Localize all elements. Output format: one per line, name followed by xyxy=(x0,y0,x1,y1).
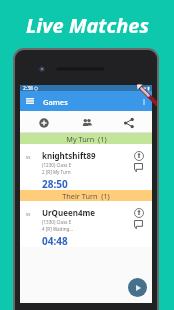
button[interactable]: Play xyxy=(128,278,147,297)
staticText: vs xyxy=(26,154,31,160)
staticText: 4 [R] Waiting... xyxy=(42,226,74,232)
button[interactable]: Chat xyxy=(133,220,144,229)
button[interactable]: vs xyxy=(20,144,152,190)
staticText: Games xyxy=(43,97,68,107)
button[interactable]: My Turn (1) xyxy=(20,133,152,144)
staticText: Live Matches xyxy=(26,12,149,39)
button[interactable]: Info xyxy=(133,207,144,218)
staticText: UrQueen4me xyxy=(42,207,96,218)
button[interactable]: More options xyxy=(139,97,148,106)
staticText: 2 [R] My Turn xyxy=(42,169,71,175)
button[interactable]: Share xyxy=(108,111,152,132)
staticText: (1330) Class E xyxy=(42,219,72,225)
button[interactable]: Chat xyxy=(133,163,144,172)
staticText: 2:38 xyxy=(23,85,33,91)
staticText: vs xyxy=(26,211,31,217)
button[interactable]: Friends xyxy=(64,111,108,132)
button[interactable]: New game xyxy=(20,111,64,132)
staticText: (1230) Class E xyxy=(42,162,72,168)
button[interactable]: Their Turn (1) xyxy=(20,190,152,201)
staticText: Their Turn (1) xyxy=(62,191,110,201)
button[interactable]: Info xyxy=(133,150,144,161)
staticText: 04:48 xyxy=(42,234,68,248)
button[interactable]: Menu xyxy=(25,96,35,106)
staticText: knightshift89 xyxy=(42,150,96,161)
button[interactable]: vs xyxy=(20,201,152,247)
staticText: 28:50 xyxy=(42,177,68,191)
staticText: My Turn (1) xyxy=(66,134,107,144)
